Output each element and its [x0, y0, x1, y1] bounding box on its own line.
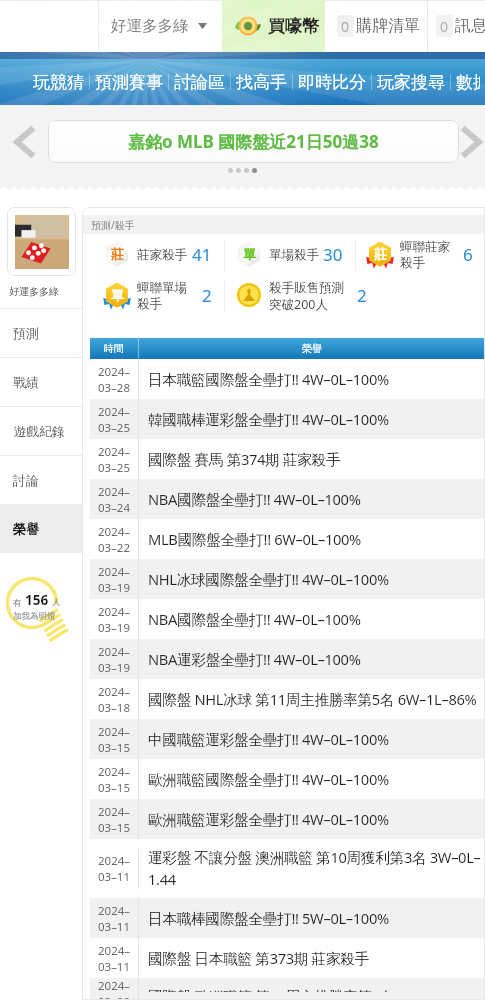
button[interactable]: 2024– 03–24	[90, 479, 485, 519]
staticText: 2024– 03–22	[90, 524, 138, 555]
staticText: 蟬聯單場 殺手	[137, 280, 202, 312]
button[interactable]: 2024– 03–25	[90, 439, 485, 479]
staticText: 2024– 03–25	[90, 404, 138, 435]
button[interactable]: 遊戲紀錄	[0, 406, 82, 455]
staticText: 討論	[13, 472, 39, 488]
button[interactable]: 單	[93, 275, 224, 316]
button[interactable]: 2024– 03–11	[90, 938, 485, 978]
staticText: 榮譽	[13, 521, 39, 537]
staticText: 2024– 03–19	[90, 564, 138, 595]
staticText: MLB國際盤全壘打!! 6W–0L–100%	[148, 529, 484, 549]
button[interactable]: 2024– 03–19	[90, 639, 485, 679]
staticText: 莊家殺手	[137, 247, 192, 263]
staticText: 找高手	[236, 72, 287, 93]
staticText: 蟬聯莊家 殺手	[400, 239, 463, 271]
button[interactable]: 莊	[356, 234, 485, 275]
staticText: 國際盤 賽馬 第374期 莊家殺手	[148, 449, 484, 469]
button[interactable]: 2024– 03–25	[90, 399, 485, 439]
staticText: 2024– 03–11	[90, 943, 138, 974]
button[interactable]: 殺手販售預測 突破200人	[225, 275, 379, 316]
staticText: 156	[25, 591, 49, 609]
staticText: 國際盤 歐洲職籃 第99周主推勝率第1名 2W–0L–	[148, 986, 484, 992]
button[interactable]: 2024– 03–15	[90, 759, 485, 799]
button[interactable]: 數據	[451, 59, 485, 105]
button[interactable]: 2024– 03–15	[90, 719, 485, 759]
button[interactable]: 2024– 03–15	[90, 799, 485, 839]
staticText: 嘉銘o MLB 國際盤近21日50過38	[128, 130, 379, 153]
button[interactable]: 即時比分	[293, 59, 371, 105]
button[interactable]: 2024– 03–11	[90, 898, 485, 938]
staticText: 日本職棒國際盤全壘打!! 5W–0L–100%	[148, 908, 484, 928]
staticText: 2024– 03–15	[90, 804, 138, 835]
button[interactable]: 玩家搜尋	[372, 59, 450, 105]
staticText: 人	[52, 597, 61, 608]
staticText: 預測賽事	[95, 72, 163, 93]
staticText: 韓國職棒運彩盤全壘打!! 4W–0L–100%	[148, 409, 484, 429]
staticText: 歐洲職籃運彩盤全壘打!! 4W–0L–100%	[148, 809, 484, 829]
staticText: 單	[243, 246, 256, 262]
staticText: NBA國際盤全壘打!! 4W–0L–100%	[148, 489, 484, 509]
button[interactable]: 2024– 03–19	[90, 559, 485, 599]
button[interactable]: Profile photo	[7, 207, 76, 276]
button[interactable]: Next	[459, 120, 485, 163]
staticText: 2024– 03–25	[90, 444, 138, 475]
staticText: 時間	[90, 342, 138, 355]
button[interactable]: 2024– 03–19	[90, 599, 485, 639]
staticText: 殺手販售預測 突破200人	[269, 280, 357, 312]
staticText: 2024– 03–19	[90, 644, 138, 675]
staticText: NBA國際盤全壘打!! 4W–0L–100%	[148, 609, 484, 629]
button[interactable]: 預測賽事	[90, 59, 168, 105]
staticText: 2024– 03–18	[90, 684, 138, 715]
staticText: 好運多多綠	[0, 285, 68, 298]
staticText: 即時比分	[298, 72, 366, 93]
button[interactable]: 0	[325, 0, 427, 52]
staticText: 2024– 03–11	[90, 903, 138, 934]
button[interactable]: 2024– 03–28	[90, 359, 485, 399]
staticText: 莊	[374, 246, 387, 262]
staticText: 買嚎幣	[268, 16, 319, 37]
button[interactable]: 2024– 03–11	[90, 839, 485, 898]
button[interactable]: Previous	[0, 120, 48, 163]
staticText: 2024– 03–28	[90, 364, 138, 395]
staticText: 購牌清單	[356, 16, 420, 36]
button[interactable]: 2024– 03–18	[90, 679, 485, 719]
button[interactable]: 預測	[0, 308, 82, 357]
button[interactable]: 莊	[93, 234, 224, 275]
button[interactable]: 買嚎幣	[222, 0, 325, 52]
button[interactable]: 嘉銘o MLB 國際盤近21日50過38	[48, 120, 459, 163]
button[interactable]: 討論區	[169, 59, 230, 105]
button[interactable]: 榮譽	[0, 504, 82, 553]
staticText: 41	[192, 243, 212, 266]
staticText: 2024– 03–19	[90, 604, 138, 635]
staticText: 討論區	[174, 72, 225, 93]
staticText: 遊戲紀錄	[13, 423, 65, 439]
staticText: 0	[440, 17, 449, 36]
button[interactable]: 玩競猜	[28, 59, 89, 105]
staticText: 戰績	[13, 374, 39, 390]
button[interactable]: 討論	[0, 455, 82, 504]
staticText: 2024– 03–15	[90, 764, 138, 795]
staticText: 數據	[456, 72, 480, 93]
button[interactable]: 單	[225, 234, 355, 275]
button[interactable]: 戰績	[0, 357, 82, 406]
button[interactable]: 2024– 03–22	[90, 519, 485, 559]
staticText: 訊息	[455, 16, 485, 36]
staticText: 單	[111, 287, 124, 303]
staticText: 2	[357, 284, 367, 307]
staticText: 運彩盤 不讓分盤 澳洲職籃 第10周獲利第3名 3W–0L–1.44	[148, 847, 484, 890]
staticText: 6	[463, 243, 473, 266]
staticText: 預測/殺手	[91, 218, 135, 232]
button[interactable]: 好運多多綠	[99, 0, 222, 52]
staticText: 2	[202, 284, 212, 307]
staticText: 2024– 03–08	[90, 978, 138, 1000]
staticText: 2024– 03–24	[90, 484, 138, 515]
button[interactable]: 0	[428, 0, 485, 52]
staticText: 玩競猜	[33, 72, 84, 93]
staticText: 有	[13, 598, 22, 609]
button[interactable]: 2024– 03–08	[90, 978, 485, 1000]
staticText: NHL冰球國際盤全壘打!! 4W–0L–100%	[148, 569, 484, 589]
staticText: 榮譽	[139, 342, 485, 355]
button[interactable]: 找高手	[231, 59, 292, 105]
staticText: 國際盤 NHL冰球 第11周主推勝率第5名 6W–1L–86%	[148, 689, 484, 709]
staticText: 2024– 03–11	[90, 853, 138, 884]
